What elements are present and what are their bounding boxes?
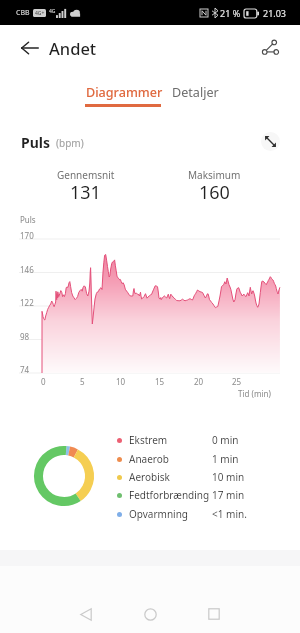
- button[interactable]: Home: [132, 596, 168, 632]
- staticText: Diagrammer: [86, 84, 163, 101]
- button[interactable]: Fedtforbrænding: [117, 487, 277, 503]
- staticText: 15: [155, 376, 165, 387]
- button[interactable]: Back: [68, 596, 104, 632]
- staticText: 17 min: [212, 488, 245, 502]
- staticText: Detaljer: [172, 84, 219, 101]
- staticText: 4G+: [35, 10, 45, 17]
- staticText: Maksimum: [188, 168, 241, 182]
- staticText: 21 %: [220, 7, 241, 19]
- staticText: 146: [20, 264, 34, 275]
- staticText: 4G: [49, 8, 56, 15]
- button[interactable]: Anaerob: [117, 451, 277, 467]
- staticText: 98: [20, 331, 30, 342]
- staticText: 5: [80, 376, 85, 387]
- staticText: Puls: [21, 133, 50, 152]
- button[interactable]: Opvarmning: [117, 506, 277, 522]
- staticText: 0 min: [212, 433, 239, 447]
- button[interactable]: Expand chart: [261, 132, 280, 151]
- staticText: Andet: [49, 37, 97, 59]
- button[interactable]: Aerobisk: [117, 469, 277, 485]
- staticText: 170: [20, 230, 34, 241]
- staticText: 160: [199, 180, 230, 205]
- button[interactable]: Back: [17, 35, 43, 61]
- staticText: 10: [116, 376, 126, 387]
- button[interactable]: Recent apps: [196, 596, 232, 632]
- staticText: 74: [20, 364, 30, 375]
- staticText: Ekstrem: [129, 433, 168, 447]
- button[interactable]: Detaljer: [172, 84, 224, 104]
- button[interactable]: Ekstrem: [117, 432, 277, 448]
- staticText: 131: [70, 180, 101, 205]
- staticText: 10 min: [212, 470, 245, 484]
- staticText: 20: [194, 376, 204, 387]
- staticText: 25: [232, 376, 242, 387]
- staticText: Aerobisk: [129, 470, 170, 484]
- staticText: (bpm): [56, 136, 84, 150]
- staticText: Gennemsnit: [57, 168, 115, 182]
- staticText: <1 min.: [212, 507, 247, 521]
- staticText: Anaerob: [129, 452, 169, 466]
- staticText: 122: [20, 297, 34, 308]
- staticText: 0: [41, 376, 46, 387]
- staticText: 1 min: [212, 452, 239, 466]
- staticText: Fedtforbrænding: [129, 488, 210, 502]
- button[interactable]: Share: [257, 34, 283, 60]
- staticText: 21.03: [263, 7, 287, 19]
- staticText: Puls: [20, 214, 36, 225]
- staticText: Tid (min): [238, 388, 271, 399]
- staticText: CBB: [16, 8, 30, 18]
- staticText: Opvarmning: [129, 507, 189, 521]
- button[interactable]: Diagrammer: [81, 84, 165, 108]
